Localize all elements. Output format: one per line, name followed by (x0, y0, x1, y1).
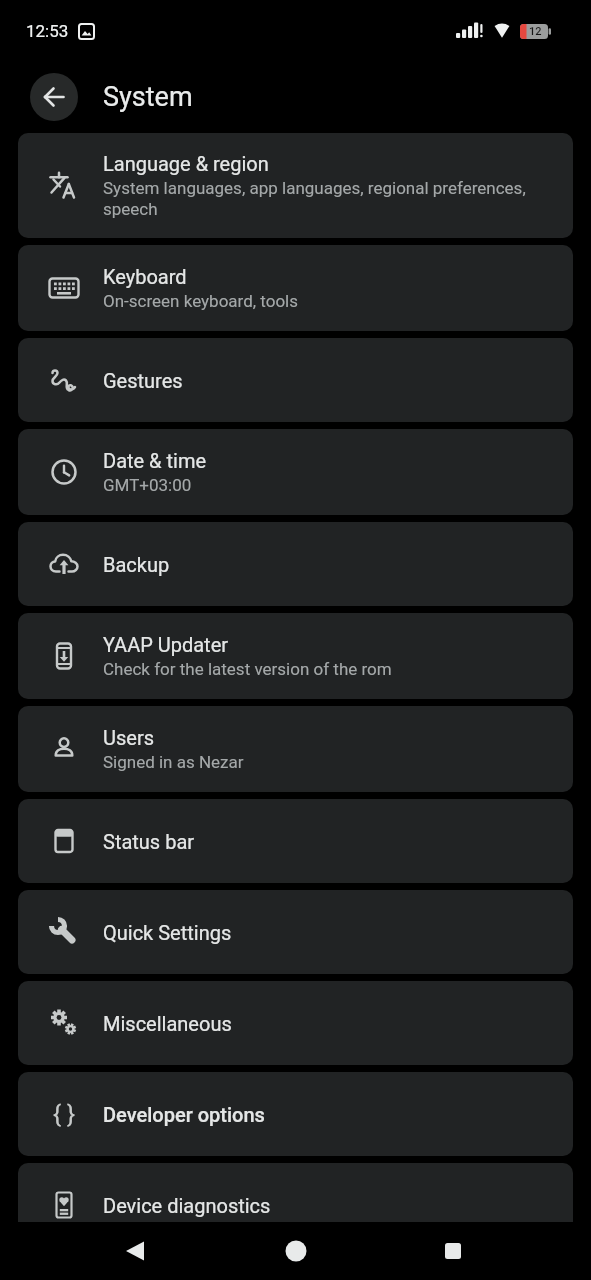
button[interactable]: Gestures (18, 338, 573, 422)
staticText: GMT+03:00 (103, 475, 192, 495)
staticText: Signed in as Nezar (103, 752, 244, 772)
staticText: Keyboard (103, 265, 187, 288)
button[interactable]: Users (18, 706, 573, 792)
staticText: Backup (103, 553, 170, 576)
button[interactable]: { } (18, 1072, 573, 1156)
staticText: Check for the latest version of the rom (103, 659, 392, 679)
staticText: Language & region (103, 152, 269, 175)
staticText: Quick Settings (103, 921, 232, 944)
button[interactable]: Status bar (18, 799, 573, 883)
staticText: 12:53 (26, 21, 69, 41)
staticText: YAAP Updater (103, 633, 229, 656)
staticText: System languages, app languages, regiona… (103, 178, 526, 219)
button[interactable]: YAAP Updater (18, 613, 573, 699)
button[interactable]: Keyboard (18, 245, 573, 331)
button[interactable]: Backup (18, 522, 573, 606)
button[interactable] (442, 1240, 464, 1262)
staticText: Device diagnostics (103, 1194, 271, 1217)
staticText: Status bar (103, 830, 195, 853)
button[interactable] (285, 1240, 307, 1262)
button[interactable] (30, 73, 78, 121)
staticText: Developer options (103, 1103, 265, 1126)
button[interactable]: Date & time (18, 429, 573, 515)
button[interactable]: Miscellaneous (18, 981, 573, 1065)
button[interactable] (124, 1240, 146, 1262)
staticText: Miscellaneous (103, 1012, 232, 1035)
staticText: { } (53, 1100, 76, 1128)
staticText: 12 (529, 25, 542, 38)
button[interactable]: Language & region (18, 133, 573, 238)
staticText: Date & time (103, 449, 207, 472)
staticText: On-screen keyboard, tools (103, 291, 299, 311)
staticText: System (103, 81, 193, 113)
staticText: Users (103, 726, 154, 749)
button[interactable]: Quick Settings (18, 890, 573, 974)
button[interactable]: Device diagnostics (18, 1163, 573, 1247)
staticText: Gestures (103, 369, 183, 392)
